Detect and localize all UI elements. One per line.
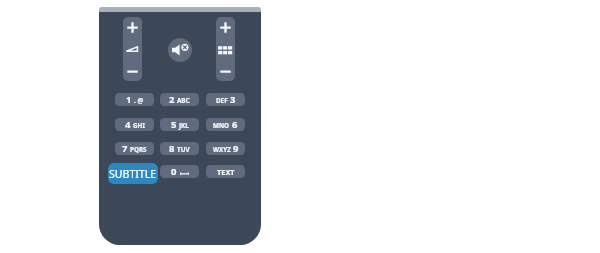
staticText: SUBTITLE: [109, 167, 157, 181]
staticText: 9: [233, 142, 239, 155]
staticText: 3: [230, 93, 236, 106]
staticText: GHI: [133, 121, 145, 130]
button[interactable]: Volume: [123, 17, 142, 81]
staticText: 6: [232, 118, 238, 131]
button[interactable]: 2: [160, 93, 199, 106]
button[interactable]: 0: [160, 165, 199, 178]
staticText: 1: [126, 93, 132, 106]
button[interactable]: TEXT: [206, 165, 245, 178]
staticText: ABC: [177, 96, 190, 105]
button[interactable]: 7: [115, 142, 154, 155]
staticText: 4: [125, 118, 131, 131]
staticText: 5: [171, 118, 177, 131]
button[interactable]: 1: [115, 93, 154, 106]
button[interactable]: 8: [160, 142, 199, 155]
button[interactable]: 4: [115, 118, 154, 131]
staticText: MNO: [213, 121, 230, 130]
staticText: JKL: [179, 121, 189, 130]
staticText: 7: [122, 142, 128, 155]
button[interactable]: MNO: [206, 118, 245, 131]
button[interactable]: Channel list: [216, 17, 235, 81]
staticText: PQRS: [130, 145, 147, 154]
button[interactable]: WXYZ: [206, 142, 245, 155]
button[interactable]: DEF: [206, 93, 245, 106]
staticText: 8: [169, 142, 175, 155]
button[interactable]: Mute: [168, 38, 192, 62]
staticText: . @: [134, 96, 144, 105]
staticText: TEXT: [217, 167, 235, 177]
staticText: 0: [171, 165, 177, 178]
button[interactable]: SUBTITLE: [108, 163, 158, 184]
button[interactable]: 5: [160, 118, 199, 131]
staticText: DEF: [216, 96, 228, 105]
staticText: 2: [169, 93, 175, 106]
staticText: TUV: [177, 145, 190, 154]
staticText: WXYZ: [213, 145, 231, 154]
